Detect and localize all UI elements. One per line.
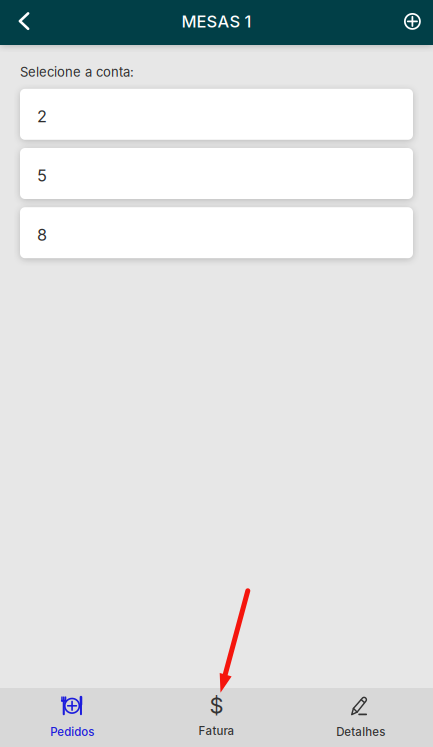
staticText: 8 bbox=[37, 225, 47, 245]
button[interactable]: 5 bbox=[20, 148, 413, 199]
staticText: 5 bbox=[37, 166, 47, 185]
staticText: $ bbox=[209, 692, 223, 719]
button[interactable]: Back bbox=[0, 0, 48, 45]
staticText: 2 bbox=[37, 106, 47, 126]
staticText: Pedidos bbox=[50, 725, 94, 739]
button[interactable]: $ bbox=[144, 688, 289, 747]
staticText: MESAS 1 bbox=[181, 11, 251, 31]
button[interactable]: 8 bbox=[20, 207, 413, 258]
button[interactable]: 2 bbox=[20, 89, 413, 140]
staticText: Detalhes bbox=[336, 725, 385, 739]
staticText: Selecione a conta: bbox=[20, 64, 134, 80]
button[interactable]: Detalhes bbox=[289, 688, 433, 747]
button[interactable]: Pedidos bbox=[0, 688, 144, 747]
staticText: Fatura bbox=[198, 724, 234, 738]
button[interactable]: Add bbox=[392, 0, 433, 45]
